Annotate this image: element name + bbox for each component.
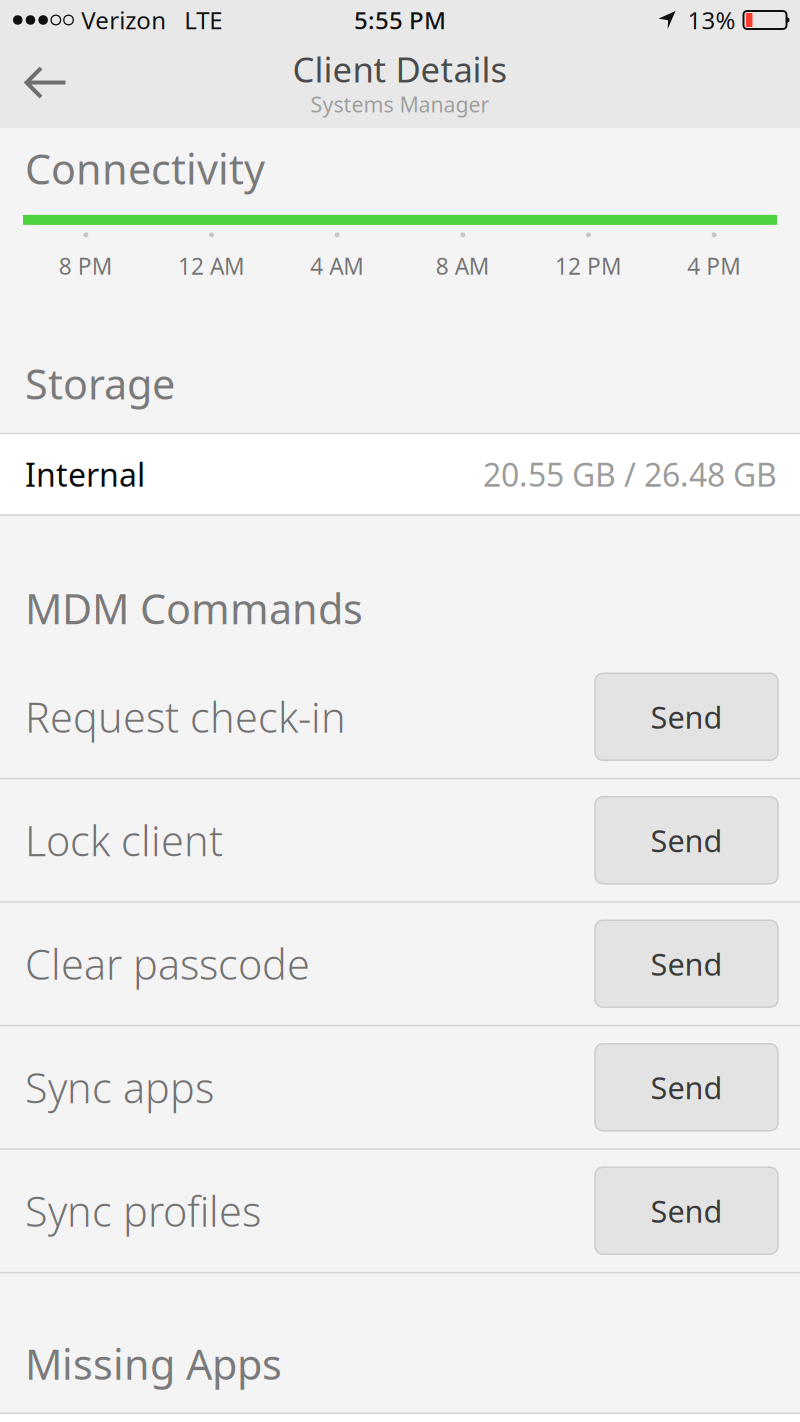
staticText: Sync apps	[25, 1060, 214, 1115]
staticText: Send	[650, 696, 722, 737]
staticText: Storage	[25, 356, 175, 411]
button[interactable]: Internal	[0, 434, 800, 514]
staticText: Send	[650, 1190, 722, 1231]
staticText: Sync profiles	[25, 1183, 261, 1238]
staticText: Client Details	[292, 46, 507, 92]
staticText: Send	[650, 1067, 722, 1108]
staticText: Lock client	[25, 813, 223, 868]
staticText: 12 PM	[555, 251, 622, 281]
button[interactable]: Sync profiles	[0, 1150, 800, 1272]
staticText: 8 AM	[436, 251, 490, 281]
staticText: 8 PM	[59, 251, 113, 281]
staticText: LTE	[184, 4, 222, 36]
staticText: Missing Apps	[25, 1336, 282, 1391]
staticText: MDM Commands	[25, 581, 363, 636]
staticText: Request check-in	[25, 689, 346, 744]
staticText: Systems Manager	[310, 90, 489, 118]
staticText: Internal	[25, 453, 145, 496]
staticText: 5:55 PM	[354, 4, 446, 36]
button[interactable]: Request check-in	[0, 656, 800, 778]
button[interactable]: Clear passcode	[0, 903, 800, 1025]
staticText: Send	[650, 820, 722, 861]
staticText: 20.55 GB / 26.48 GB	[483, 453, 777, 496]
staticText: Verizon	[81, 4, 166, 36]
button[interactable]: Sync apps	[0, 1026, 800, 1148]
button[interactable]: Back	[0, 51, 92, 115]
staticText: 4 AM	[310, 251, 364, 281]
staticText: Connectivity	[25, 141, 265, 196]
staticText: 12 AM	[178, 251, 245, 281]
staticText: Clear passcode	[25, 936, 310, 991]
staticText: Send	[650, 943, 722, 984]
button[interactable]: Lock client	[0, 779, 800, 901]
staticText: 13%	[687, 4, 735, 36]
staticText: 4 PM	[687, 251, 741, 281]
